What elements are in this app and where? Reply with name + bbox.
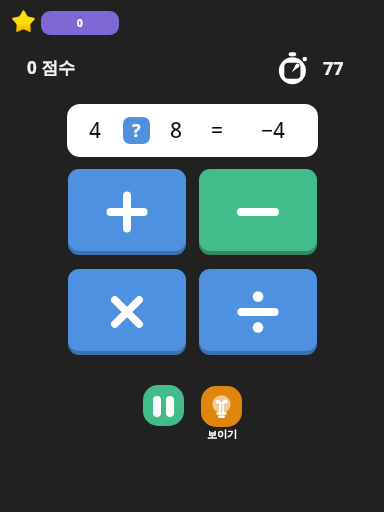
button[interactable]: Hint (201, 386, 242, 427)
staticText: 4 (89, 116, 102, 145)
staticText: 0 (77, 16, 83, 30)
staticText: = (211, 116, 224, 145)
button[interactable]: 0 (41, 11, 119, 35)
button[interactable]: Multiply (68, 269, 186, 355)
staticText: 77 (323, 56, 344, 81)
button[interactable]: Minus (199, 169, 317, 255)
staticText: 0 점수 (27, 56, 76, 79)
button[interactable]: Stars (10, 8, 37, 35)
button[interactable]: Pause (143, 385, 184, 426)
staticText: 8 (170, 116, 183, 145)
button[interactable]: ? (123, 117, 150, 144)
button[interactable]: Plus (68, 169, 186, 255)
staticText: −4 (261, 116, 286, 145)
button[interactable]: Divide (199, 269, 317, 355)
staticText: 보이기 (207, 428, 237, 441)
staticText: ? (132, 118, 141, 143)
